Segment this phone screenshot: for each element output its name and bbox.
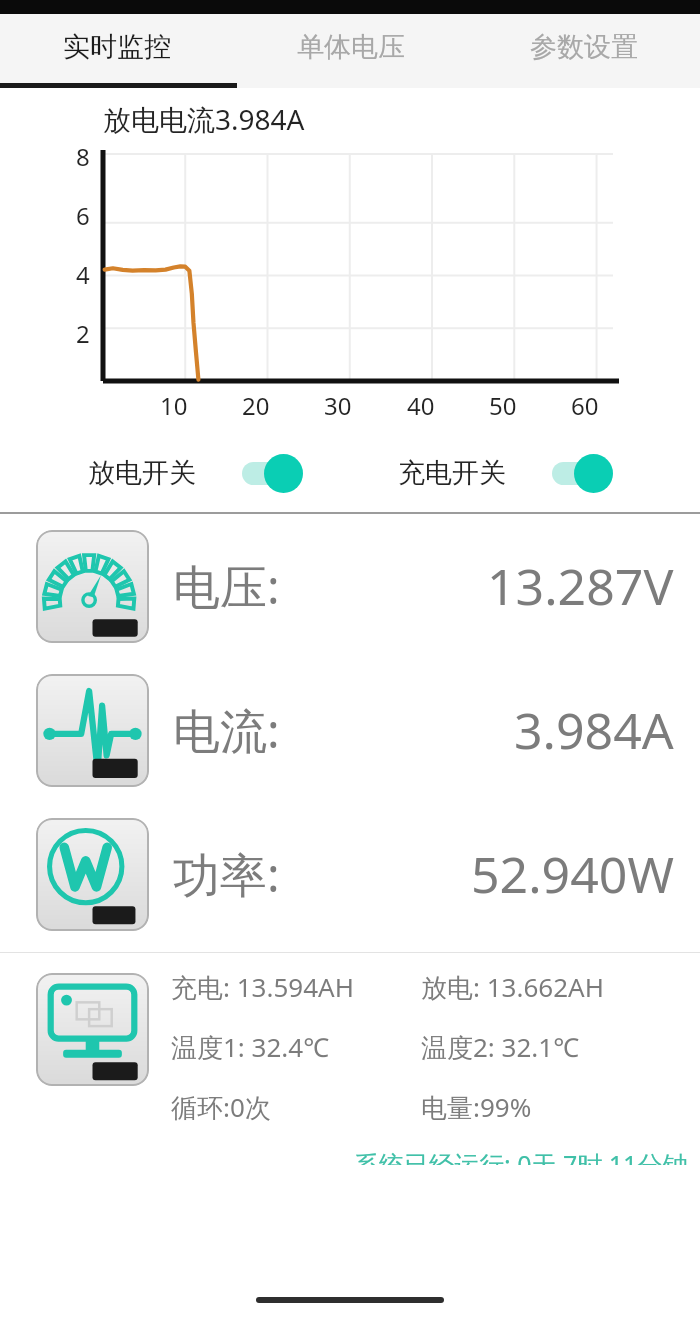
- staticText: 系统已经运行: 0天 7时 11分钟: [354, 1147, 688, 1165]
- staticText: 单体电压: [297, 30, 405, 64]
- staticText: 6: [76, 199, 90, 232]
- staticText: 60: [571, 389, 599, 422]
- other: 功率 Power: [36, 818, 149, 931]
- button[interactable]: 实时监控: [0, 14, 234, 88]
- other: 电压 Voltage: [36, 530, 149, 643]
- staticText: 52.940W: [471, 840, 674, 908]
- staticText: 8: [76, 140, 90, 173]
- button[interactable]: 单体电压: [234, 14, 467, 88]
- staticText: 参数设置: [530, 30, 638, 64]
- staticText: 10: [160, 389, 188, 422]
- staticText: 4: [76, 258, 90, 291]
- button[interactable]: 充电开关: [398, 453, 614, 493]
- button[interactable]: 电压 Voltage: [0, 520, 700, 652]
- other: Toggle switch, on: [550, 453, 614, 493]
- button[interactable]: 功率 Power: [0, 808, 700, 940]
- staticText: 放电电流3.984A: [103, 100, 305, 138]
- other: 电流 Current: [36, 674, 149, 787]
- staticText: 40: [407, 389, 435, 422]
- button[interactable]: 电流 Current: [0, 664, 700, 796]
- staticText: 电量:99%: [421, 1089, 532, 1125]
- other: Toggle switch, on: [240, 453, 304, 493]
- staticText: 20: [242, 389, 270, 422]
- staticText: 温度2: 32.1℃: [421, 1029, 580, 1065]
- staticText: 温度1: 32.4℃: [171, 1029, 330, 1065]
- button[interactable]: 系统 System: [0, 953, 700, 1165]
- staticText: 充电开关: [398, 456, 506, 490]
- button[interactable]: 放电开关: [88, 453, 304, 493]
- staticText: 50: [489, 389, 517, 422]
- staticText: 放电开关: [88, 456, 196, 490]
- staticText: 循环:0次: [171, 1089, 271, 1125]
- staticText: 13.287V: [487, 552, 674, 620]
- staticText: 30: [324, 389, 352, 422]
- staticText: 放电: 13.662AH: [421, 969, 604, 1005]
- staticText: 3.984A: [514, 696, 674, 764]
- staticText: 功率:: [173, 842, 280, 906]
- other: 系统 System: [36, 973, 149, 1086]
- staticText: 电压:: [173, 554, 280, 618]
- staticText: 2: [76, 317, 90, 350]
- staticText: 电流:: [173, 698, 280, 762]
- staticText: 实时监控: [63, 30, 171, 64]
- staticText: 充电: 13.594AH: [171, 969, 354, 1005]
- button[interactable]: 参数设置: [467, 14, 700, 88]
